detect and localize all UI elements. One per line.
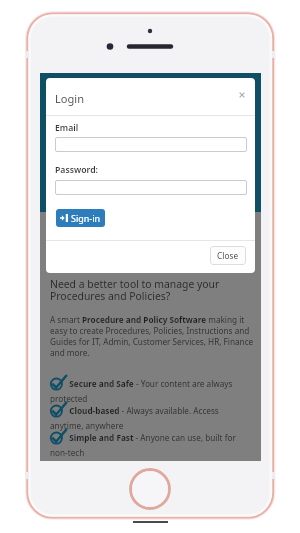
staticText: Need a better tool to manage your Proced… [50,277,220,303]
staticText: Sign-in [71,212,101,224]
staticText: Password: [55,164,98,176]
staticText: *Secure and Safe - Your content are alwa… [50,377,254,404]
button[interactable] [55,137,247,152]
staticText: *Simple and Fast - Anyone can use, built… [50,431,254,458]
button[interactable]: Close [210,246,246,265]
staticText: *Cloud-based - Always available. Access … [50,404,254,431]
staticText: Email [55,122,79,134]
staticText: A smart Procedure and Policy Software ma… [50,314,254,358]
button[interactable]: Close [234,87,250,103]
button[interactable]: Sign-in [56,209,105,227]
staticText: Close [217,250,239,261]
staticText: Login [55,91,85,106]
button[interactable] [55,180,247,195]
